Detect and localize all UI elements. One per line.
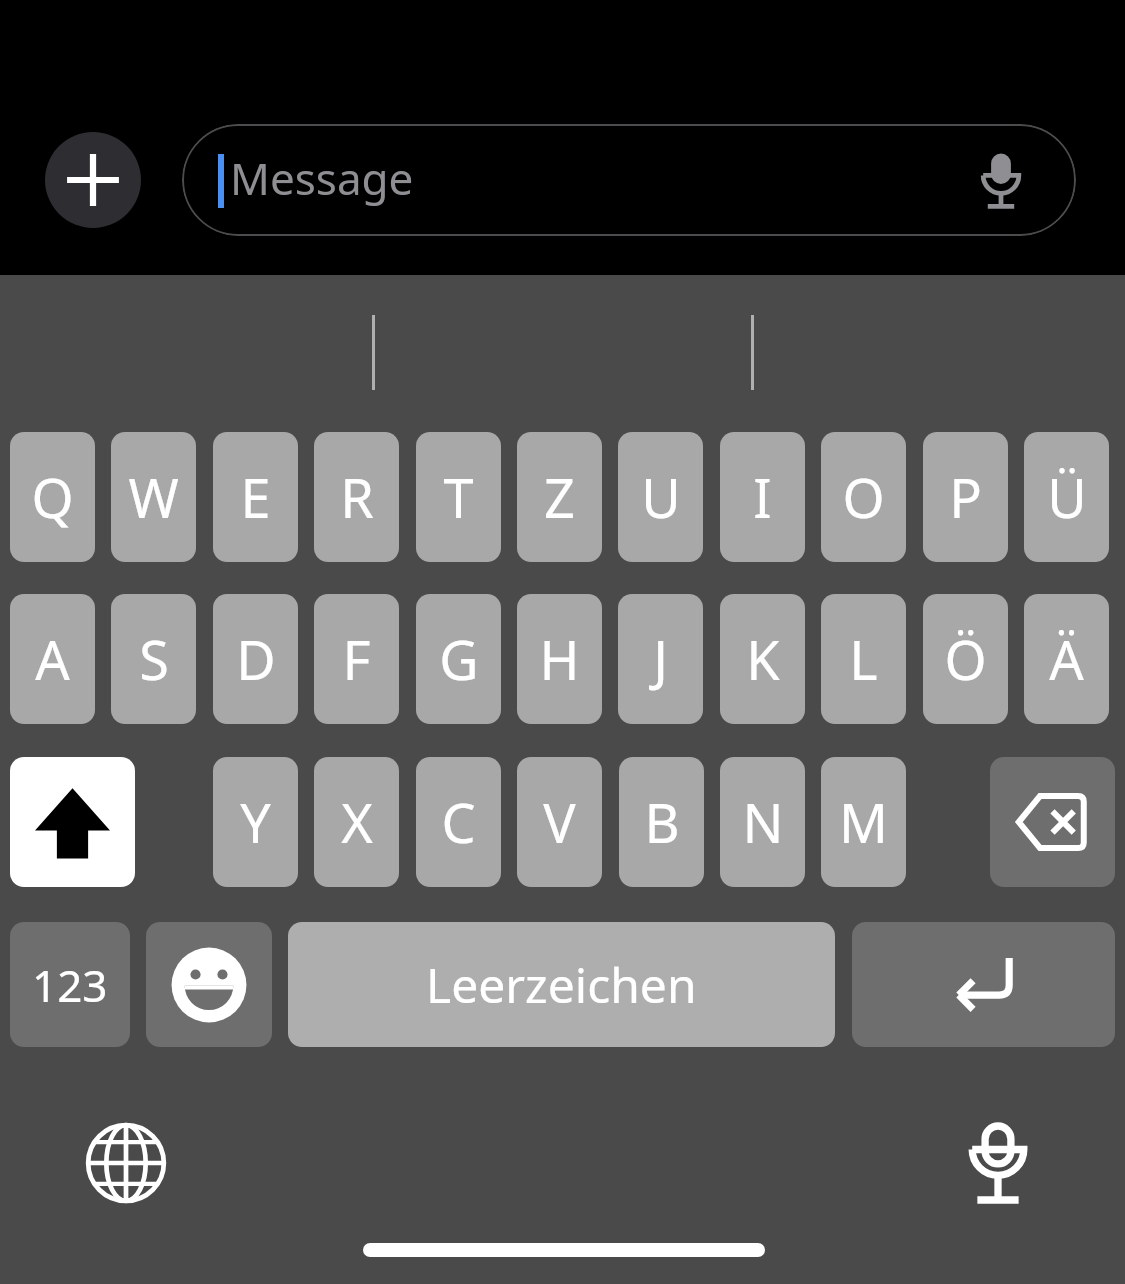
staticText: O [842, 460, 885, 534]
staticText: E [240, 460, 271, 534]
staticText: F [342, 622, 371, 696]
button[interactable]: J [618, 594, 703, 724]
button[interactable]: Add attachment [45, 132, 141, 228]
staticText: I [753, 460, 772, 534]
staticText: Ü [1047, 460, 1087, 534]
button[interactable]: D [213, 594, 298, 724]
staticText: 123 [32, 955, 108, 1015]
staticText: J [653, 622, 668, 696]
button[interactable]: Q [10, 432, 95, 562]
button[interactable]: Z [517, 432, 602, 562]
button[interactable]: C [416, 757, 501, 887]
staticText: X [341, 785, 373, 859]
staticText: H [539, 622, 580, 696]
staticText: M [839, 785, 888, 859]
staticText: U [641, 460, 681, 534]
staticText: Ö [944, 622, 987, 696]
button[interactable]: P [923, 432, 1008, 562]
staticText: Ä [1049, 622, 1084, 696]
button[interactable]: U [618, 432, 703, 562]
button[interactable]: Voice input [968, 147, 1034, 213]
staticText: Y [240, 785, 271, 859]
staticText: Q [31, 460, 74, 534]
button[interactable]: Enter [852, 922, 1115, 1047]
button[interactable]: S [111, 594, 196, 724]
button[interactable]: Change language [66, 1103, 186, 1223]
button[interactable]: L [821, 594, 906, 724]
button[interactable]: K [720, 594, 805, 724]
staticText: N [742, 785, 784, 859]
button[interactable]: I [720, 432, 805, 562]
staticText: T [443, 460, 474, 534]
button[interactable]: Ü [1024, 432, 1109, 562]
button[interactable]: 123 [10, 922, 130, 1047]
button[interactable]: M [821, 757, 906, 887]
button[interactable]: Voice typing [938, 1103, 1058, 1223]
staticText: D [236, 622, 276, 696]
staticText: G [439, 622, 479, 696]
button[interactable]: Ö [923, 594, 1008, 724]
button[interactable]: Shift [10, 757, 135, 887]
button[interactable]: V [517, 757, 602, 887]
staticText: W [128, 460, 179, 534]
button[interactable]: W [111, 432, 196, 562]
staticText: V [543, 785, 576, 859]
staticText: S [139, 622, 169, 696]
button[interactable]: N [720, 757, 805, 887]
staticText: C [441, 785, 476, 859]
button[interactable]: Leerzeichen [288, 922, 835, 1047]
button[interactable]: E [213, 432, 298, 562]
button[interactable]: Message [182, 124, 1076, 236]
button[interactable]: A [10, 594, 95, 724]
button[interactable]: T [416, 432, 501, 562]
staticText: R [340, 460, 374, 534]
button[interactable]: B [619, 757, 704, 887]
button[interactable]: Ä [1024, 594, 1109, 724]
button[interactable]: Backspace [990, 757, 1115, 887]
button[interactable]: H [517, 594, 602, 724]
button[interactable]: Y [213, 757, 298, 887]
staticText: Leerzeichen [426, 952, 697, 1017]
button[interactable]: X [314, 757, 399, 887]
button[interactable]: O [821, 432, 906, 562]
staticText: A [35, 622, 70, 696]
button[interactable]: G [416, 594, 501, 724]
button[interactable]: R [314, 432, 399, 562]
staticText: K [746, 622, 780, 696]
staticText: L [849, 622, 878, 696]
staticText: B [644, 785, 680, 859]
button[interactable]: F [314, 594, 399, 724]
button[interactable]: Emoji [146, 922, 272, 1047]
staticText: Z [544, 460, 575, 534]
staticText: P [949, 460, 982, 534]
staticText: Message [230, 148, 414, 208]
